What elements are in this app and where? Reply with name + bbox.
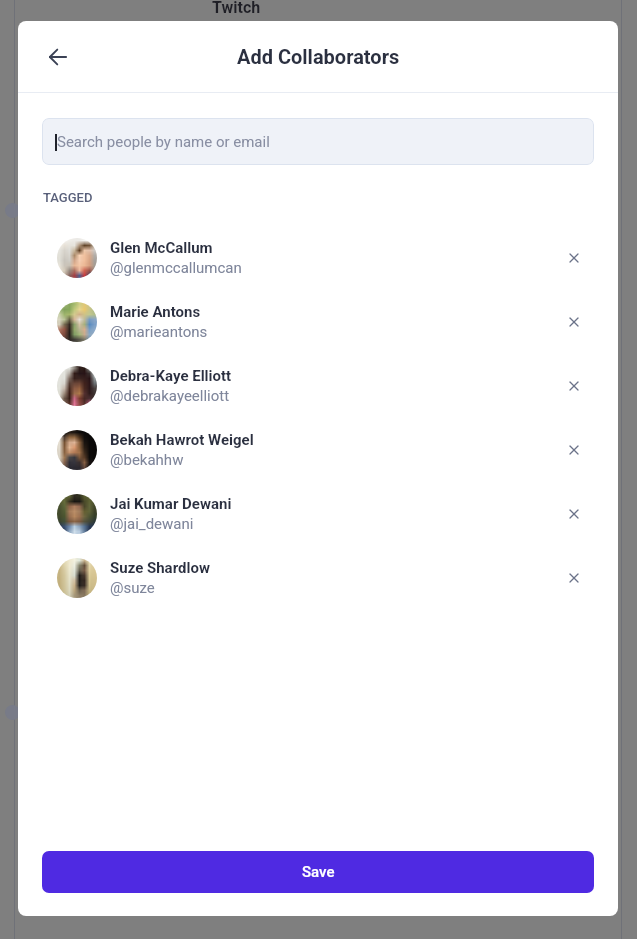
staticText: Search people by name or email [57,133,270,151]
button[interactable]: Search people by name or email [42,118,594,165]
staticText: @marieantons [110,323,208,341]
staticText: @suze [110,579,155,597]
staticText: @debrakayeelliott [110,387,230,405]
button[interactable]: Glen McCallum [18,226,618,290]
staticText: TAGGED [43,190,93,205]
button[interactable]: Remove Bekah Hawrot Weigel [558,434,590,466]
staticText: Save [302,863,335,881]
staticText: @glenmccallumcan [110,259,242,277]
button[interactable]: Remove Marie Antons [558,306,590,338]
staticText: Bekah Hawrot Weigel [110,431,254,449]
staticText: Add Collaborators [237,45,400,68]
staticText: Jai Kumar Dewani [110,495,232,513]
staticText: Debra-Kaye Elliott [110,367,232,385]
staticText: Twitch [212,0,261,17]
button[interactable]: Save [42,851,594,893]
button[interactable]: Remove Glen McCallum [558,242,590,274]
button[interactable]: Back [42,41,74,73]
button[interactable]: Remove Jai Kumar Dewani [558,498,590,530]
staticText: @bekahhw [110,451,184,469]
button[interactable]: Bekah Hawrot Weigel [18,418,618,482]
button[interactable]: Remove Suze Shardlow [558,562,590,594]
staticText: Glen McCallum [110,239,213,257]
staticText: Marie Antons [110,303,201,321]
button[interactable]: Debra-Kaye Elliott [18,354,618,418]
button[interactable]: Marie Antons [18,290,618,354]
button[interactable]: Remove Debra-Kaye Elliott [558,370,590,402]
staticText: Suze Shardlow [110,559,210,577]
button[interactable]: Suze Shardlow [18,546,618,610]
button[interactable]: Jai Kumar Dewani [18,482,618,546]
staticText: @jai_dewani [110,515,194,533]
